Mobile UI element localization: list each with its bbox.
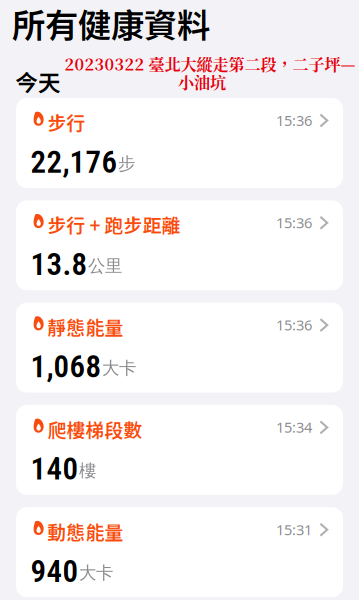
staticText: 15:31 — [276, 520, 312, 539]
staticText: 1,068 — [30, 349, 101, 385]
staticText: 步 — [118, 153, 135, 174]
staticText: 步行 — [47, 109, 85, 136]
staticText: 大卡 — [79, 562, 113, 584]
staticText: 140 — [30, 451, 78, 487]
button[interactable]: 動態能量 — [16, 507, 343, 597]
staticText: 15:36 — [276, 315, 312, 335]
staticText: 22,176 — [30, 144, 117, 180]
button[interactable]: 步行 + 跑步距離 — [16, 200, 343, 290]
staticText: 靜態能量 — [47, 313, 123, 340]
staticText: 20230322 臺北大縱走第二段，二子坪— — [64, 52, 355, 75]
button[interactable]: 爬樓梯段數 — [16, 405, 343, 495]
staticText: 樓 — [79, 460, 96, 481]
staticText: 所有健康資料 — [12, 0, 210, 47]
staticText: 15:36 — [276, 213, 312, 232]
staticText: 15:34 — [276, 417, 312, 437]
staticText: 15:36 — [276, 110, 312, 130]
staticText: 動態能量 — [47, 518, 123, 545]
button[interactable]: 步行 — [16, 98, 343, 188]
staticText: 940 — [30, 553, 78, 589]
staticText: 公里 — [88, 255, 122, 277]
staticText: 大卡 — [102, 358, 136, 379]
button[interactable]: 靜態能量 — [16, 303, 343, 393]
staticText: 步行 + 跑步距離 — [47, 211, 180, 238]
staticText: 爬樓梯段數 — [47, 415, 142, 442]
staticText: 13.8 — [30, 246, 87, 282]
staticText: 小油坑 — [178, 70, 226, 93]
staticText: 今天 — [15, 65, 61, 98]
